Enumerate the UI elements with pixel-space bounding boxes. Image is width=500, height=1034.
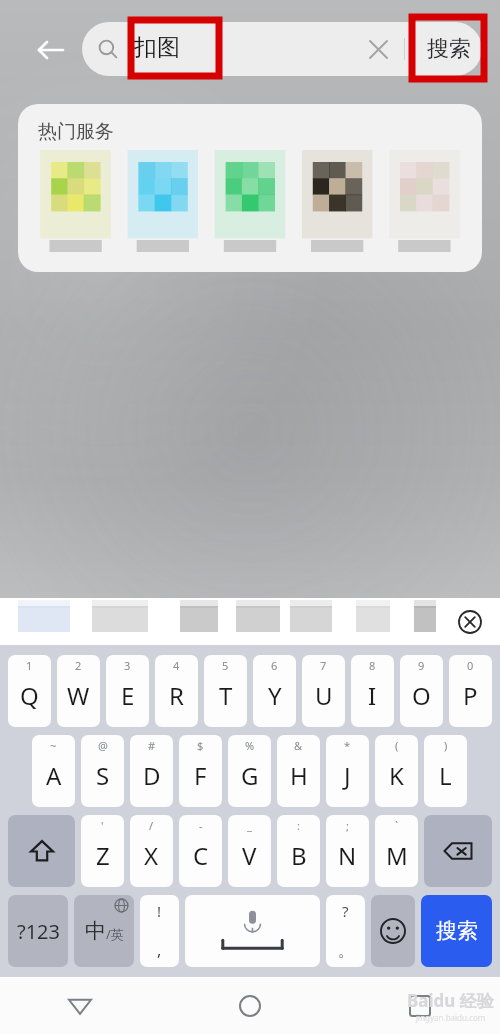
button[interactable]: /: [130, 815, 173, 887]
staticText: jingyan.baidu.com: [416, 1012, 486, 1023]
button[interactable]: ?: [326, 895, 365, 967]
button[interactable]: ~: [32, 735, 75, 807]
staticText: 中: [85, 918, 106, 944]
button[interactable]: _: [228, 815, 271, 887]
staticText: 5: [222, 658, 229, 673]
button[interactable]: ?123: [8, 895, 68, 967]
staticText: R: [169, 679, 184, 712]
button[interactable]: 中: [74, 895, 134, 967]
button[interactable]: $: [179, 735, 222, 807]
staticText: :: [297, 818, 300, 833]
staticText: N: [338, 839, 357, 872]
staticText: `: [395, 818, 399, 833]
staticText: ~: [50, 738, 57, 753]
button[interactable]: -: [179, 815, 222, 887]
button[interactable]: Backspace: [424, 815, 492, 887]
button[interactable]: !: [140, 895, 179, 967]
staticText: 3: [124, 658, 131, 673]
button[interactable]: 3: [106, 655, 149, 727]
staticText: P: [463, 679, 478, 712]
button[interactable]: Emoji: [371, 895, 415, 967]
staticText: 9: [418, 658, 425, 673]
staticText: Baidu 经验: [407, 989, 494, 1012]
staticText: Y: [268, 679, 282, 712]
button[interactable]: ': [81, 815, 124, 887]
staticText: H: [290, 759, 308, 792]
staticText: F: [194, 759, 207, 792]
staticText: J: [344, 759, 351, 792]
button[interactable]: %: [228, 735, 271, 807]
staticText: I: [368, 679, 377, 712]
staticText: -: [199, 818, 203, 833]
staticText: ;: [346, 818, 349, 833]
staticText: #: [148, 738, 156, 753]
staticText: _: [247, 818, 252, 833]
button[interactable]: 8: [351, 655, 394, 727]
button[interactable]: 0: [449, 655, 492, 727]
staticText: A: [46, 759, 62, 792]
button[interactable]: *: [326, 735, 369, 807]
button[interactable]: Recents: [396, 982, 444, 1030]
staticText: U: [315, 679, 333, 712]
staticText: L: [439, 759, 452, 792]
staticText: Z: [96, 839, 110, 872]
button[interactable]: ): [424, 735, 467, 807]
button[interactable]: 9: [400, 655, 443, 727]
button[interactable]: 热门服务: [18, 104, 482, 272]
staticText: 6: [271, 658, 278, 673]
button[interactable]: 1: [8, 655, 51, 727]
button[interactable]: 2: [57, 655, 100, 727]
button[interactable]: Close candidates: [454, 606, 486, 638]
staticText: *: [344, 738, 351, 753]
button[interactable]: 7: [302, 655, 345, 727]
staticText: D: [143, 759, 161, 792]
button[interactable]: 扣图: [82, 22, 482, 76]
staticText: /英: [106, 925, 124, 943]
staticText: X: [144, 839, 159, 872]
button[interactable]: :: [277, 815, 320, 887]
staticText: ?123: [17, 918, 60, 945]
staticText: 。: [338, 941, 354, 961]
staticText: 搜索: [427, 35, 471, 63]
staticText: K: [389, 759, 404, 792]
staticText: &: [294, 738, 303, 753]
button[interactable]: 4: [155, 655, 198, 727]
staticText: %: [245, 738, 255, 753]
staticText: 1: [26, 658, 33, 673]
staticText: O: [412, 679, 431, 712]
staticText: 2: [75, 658, 82, 673]
staticText: S: [96, 759, 110, 792]
button[interactable]: 搜索: [416, 22, 482, 76]
button[interactable]: (: [375, 735, 418, 807]
staticText: ?: [342, 901, 349, 921]
staticText: E: [121, 679, 135, 712]
staticText: G: [241, 759, 259, 792]
staticText: B: [291, 839, 307, 872]
staticText: 0: [467, 658, 474, 673]
button[interactable]: 搜索: [421, 895, 492, 967]
button[interactable]: 5: [204, 655, 247, 727]
button[interactable]: Home: [226, 982, 274, 1030]
staticText: M: [386, 839, 408, 872]
button[interactable]: #: [130, 735, 173, 807]
staticText: 8: [369, 658, 376, 673]
button[interactable]: Clear: [364, 35, 392, 63]
button[interactable]: Back: [56, 982, 104, 1030]
button[interactable]: 6: [253, 655, 296, 727]
staticText: 热门服务: [38, 120, 114, 144]
button[interactable]: Space: [185, 895, 320, 967]
staticText: 搜索: [436, 918, 478, 944]
staticText: @: [98, 738, 108, 753]
staticText: (: [395, 738, 399, 753]
staticText: 4: [173, 658, 180, 673]
button[interactable]: `: [375, 815, 418, 887]
staticText: W: [67, 679, 90, 712]
staticText: Q: [20, 679, 39, 712]
button[interactable]: Shift: [8, 815, 75, 887]
button[interactable]: Back: [26, 26, 74, 74]
button[interactable]: ;: [326, 815, 369, 887]
button[interactable]: &: [277, 735, 320, 807]
staticText: ): [444, 738, 448, 753]
button[interactable]: @: [81, 735, 124, 807]
staticText: ': [101, 818, 104, 833]
